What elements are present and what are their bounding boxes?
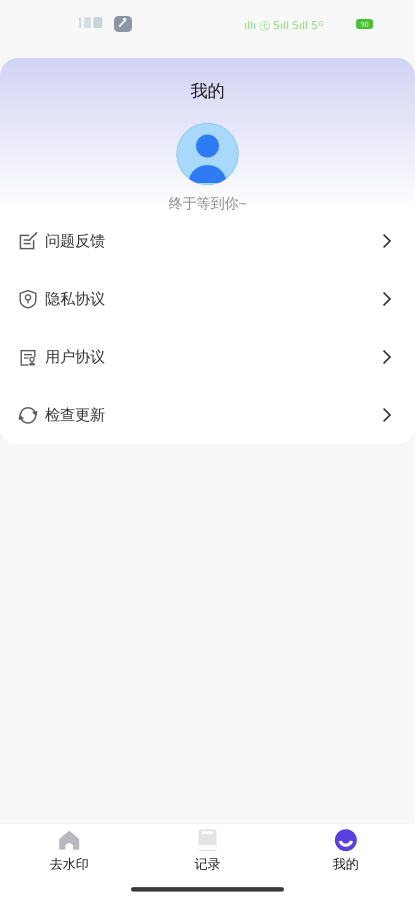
staticText: 隐私协议 bbox=[45, 289, 105, 308]
button[interactable]: 我的 bbox=[277, 824, 415, 879]
staticText: 问题反馈 bbox=[45, 231, 105, 250]
button[interactable]: 去水印 bbox=[0, 824, 138, 879]
staticText: 90 bbox=[360, 19, 368, 29]
button[interactable]: 隐私协议 bbox=[0, 270, 415, 328]
staticText: ıllı ㊆ 5ıll 5ıll 5ᴳ bbox=[244, 17, 323, 33]
staticText: 去水印 bbox=[50, 856, 89, 872]
staticText: 检查更新 bbox=[45, 405, 105, 424]
staticText: 我的 bbox=[333, 856, 359, 872]
staticText: 终于等到你~ bbox=[168, 193, 246, 213]
staticText: 用户协议 bbox=[45, 347, 105, 366]
button[interactable]: 用户协议 bbox=[0, 328, 415, 386]
button[interactable]: 问题反馈 bbox=[0, 212, 415, 270]
button[interactable]: 检查更新 bbox=[0, 386, 415, 444]
staticText: 记录 bbox=[194, 856, 220, 872]
button[interactable]: 记录 bbox=[138, 824, 277, 879]
staticText: 我的 bbox=[190, 80, 224, 102]
